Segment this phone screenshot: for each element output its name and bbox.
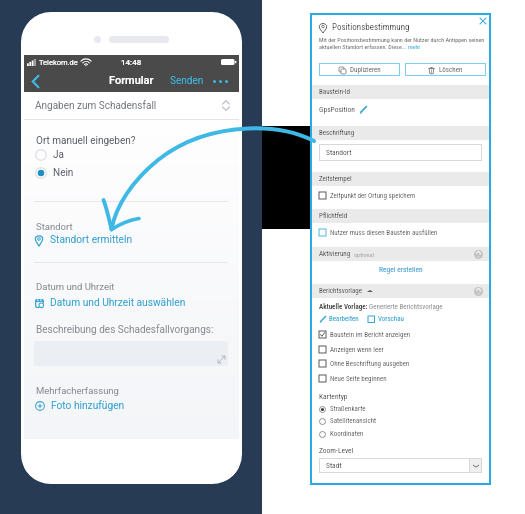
staticText: Baustein im Bericht anzeigen	[330, 331, 411, 339]
button[interactable]: Stadt	[319, 458, 482, 473]
button[interactable]: Regel erstellen	[375, 264, 427, 275]
staticText: Beschriftung	[319, 129, 355, 137]
button[interactable]: Hilfe	[474, 287, 483, 296]
staticText: Mit der Positionsbestimmung kann der Nut…	[319, 36, 486, 50]
button[interactable]: Neue Seite beginnen	[319, 372, 483, 385]
staticText: Datum und Uhrzeit auswählen	[50, 297, 186, 309]
button[interactable]: Vorschau	[368, 315, 404, 323]
button[interactable]: Foto hinzufügen	[35, 400, 125, 412]
button[interactable]: Senden	[169, 75, 205, 87]
staticText: Löschen	[439, 66, 463, 74]
staticText: Datum und Uhrzeit	[36, 281, 115, 292]
staticText: Satellitenansicht	[330, 417, 377, 425]
staticText: GpsPosition	[319, 105, 355, 114]
staticText: Duplizieren	[350, 66, 381, 74]
staticText: Foto hinzufügen	[51, 400, 125, 412]
staticText: Beschreibung des Schadesfallvorgangs:	[36, 324, 214, 336]
staticText: optional	[354, 251, 374, 258]
staticText: Baustein-Id	[319, 88, 351, 96]
staticText: Vorschau	[378, 315, 404, 323]
button[interactable]: Datum und Uhrzeit auswählen	[35, 297, 186, 309]
staticText: Ort manuell eingeben?	[36, 135, 136, 147]
button[interactable]: Anzeigen wenn leer	[319, 343, 483, 356]
staticText: Aktuelle Vorlage: Generierte Berichtsvor…	[319, 303, 443, 311]
staticText: Standort	[36, 221, 73, 232]
staticText: Regel erstellen	[379, 265, 423, 274]
staticText: Koordinaten	[330, 430, 364, 438]
staticText: Angaben zum Schadensfall	[35, 100, 157, 112]
button[interactable]: Baustein im Bericht anzeigen	[319, 328, 483, 341]
staticText: Standort ermitteln	[50, 234, 133, 246]
staticText: 14:48	[121, 58, 142, 67]
button[interactable]: Umbenennen	[359, 105, 368, 114]
button[interactable]: Standort ermitteln	[35, 234, 133, 246]
staticText: Formular	[109, 74, 154, 87]
staticText: Ja	[53, 149, 64, 161]
button[interactable]: Standort	[319, 144, 482, 161]
staticText: Telekom.de	[39, 58, 78, 67]
button[interactable]: Koordinaten	[319, 428, 483, 440]
button[interactable]: Duplizieren	[319, 63, 400, 76]
staticText: Bearbeiten	[329, 315, 359, 323]
button[interactable]: Angaben zum Schadensfall	[35, 92, 230, 119]
staticText: Mehrfacherfassung	[36, 385, 119, 396]
button[interactable]: Mehr Optionen	[211, 73, 229, 89]
button[interactable]: Satellitenansicht	[319, 415, 483, 427]
staticText: Zeitstempel	[319, 175, 352, 183]
staticText: Berichtsvorlage	[319, 287, 363, 295]
button[interactable]: Schließen	[477, 15, 488, 26]
staticText: Aktivierung	[319, 250, 351, 258]
button[interactable]: Nein	[35, 167, 74, 179]
button[interactable]: Löschen	[405, 63, 486, 76]
button[interactable]: Straßenkarte	[319, 403, 483, 415]
button[interactable]: Nutzer muss diesen Baustein ausfüllen	[319, 226, 483, 239]
staticText: Standort	[326, 148, 352, 157]
staticText: Pflichtfeld	[319, 212, 348, 220]
staticText: Ohne Beschriftung ausgeben	[330, 360, 410, 368]
staticText: Neue Seite beginnen	[330, 375, 387, 383]
staticText: Positionsbestimmung	[332, 22, 410, 33]
staticText: Nein	[53, 167, 74, 179]
button[interactable]: Zeitpunkt der Ortung speichern	[319, 189, 483, 202]
staticText: Kartentyp	[319, 392, 348, 401]
staticText: Nutzer muss diesen Baustein ausfüllen	[330, 229, 438, 237]
staticText: Anzeigen wenn leer	[330, 346, 384, 354]
button[interactable]: Ja	[35, 149, 64, 161]
staticText: Zeitpunkt der Ortung speichern	[330, 192, 416, 200]
staticText: Zoom-Level	[319, 446, 354, 455]
button[interactable]: Hilfe	[474, 250, 483, 259]
button[interactable]	[34, 341, 228, 366]
button[interactable]: Zurück	[26, 72, 44, 90]
staticText: Senden	[170, 75, 204, 87]
button[interactable]: Bearbeiten	[319, 315, 359, 323]
staticText: Straßenkarte	[330, 405, 366, 413]
button[interactable]: Ohne Beschriftung ausgeben	[319, 357, 483, 370]
staticText: Stadt	[326, 461, 342, 470]
